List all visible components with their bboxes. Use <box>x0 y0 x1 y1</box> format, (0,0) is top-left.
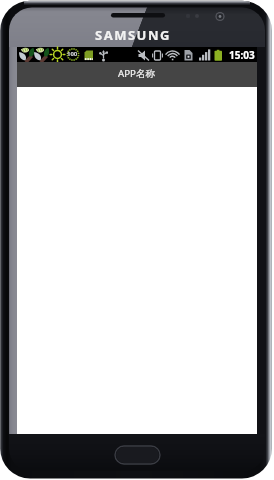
staticText: APP名称 <box>118 67 156 80</box>
button[interactable]: APP名称 <box>17 62 257 87</box>
staticText: 100 <box>67 50 78 58</box>
staticText: 15:03 <box>229 48 255 62</box>
staticText: SAMSUNG <box>95 26 171 44</box>
